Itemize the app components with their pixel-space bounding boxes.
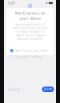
staticText: Lorem ipsum dolor sit amet consectetur e… — [12, 23, 47, 41]
button[interactable]: Cancel — [8, 87, 20, 92]
button[interactable]: Application caching — [6, 55, 54, 59]
staticText: Notifications on your device — [14, 10, 45, 21]
staticText: Cancel — [8, 87, 20, 92]
staticText: Application caching — [15, 55, 42, 58]
button[interactable]: Save files on your device — [6, 49, 54, 53]
staticText: 9:41 — [8, 0, 15, 6]
button[interactable]: Submit — [42, 86, 54, 92]
staticText: Save files on your device — [15, 49, 48, 52]
staticText: Submit — [43, 87, 52, 91]
